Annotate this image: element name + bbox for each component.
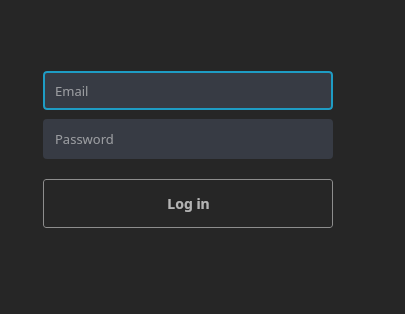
- staticText: Password: [55, 130, 114, 148]
- staticText: Log in: [167, 194, 210, 213]
- button[interactable]: Email: [43, 71, 333, 110]
- staticText: Email: [55, 82, 89, 100]
- button[interactable]: Password: [43, 119, 333, 159]
- button[interactable]: Log in: [43, 179, 333, 228]
